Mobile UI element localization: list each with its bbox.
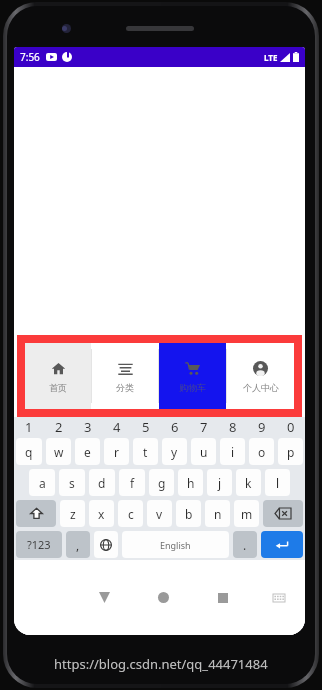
button[interactable]: Enter [261, 531, 303, 558]
staticText: s [69, 475, 75, 491]
button[interactable]: 1 [14, 417, 44, 436]
staticText: c [128, 506, 134, 522]
button[interactable]: g [149, 469, 174, 496]
staticText: 3 [84, 418, 92, 436]
staticText: 购物车 [179, 382, 206, 393]
staticText: d [98, 475, 106, 491]
staticText: g [158, 475, 166, 491]
button[interactable]: m [234, 500, 259, 527]
staticText: 7 [200, 418, 208, 436]
button[interactable]: f [119, 469, 145, 496]
button[interactable]: p [278, 438, 303, 465]
staticText: k [245, 475, 252, 491]
staticText: e [84, 444, 91, 460]
staticText: v [156, 506, 163, 522]
button[interactable]: 7 [189, 417, 218, 436]
staticText: h [187, 475, 195, 491]
button[interactable]: English [122, 531, 229, 558]
button[interactable]: Backspace [263, 500, 303, 527]
staticText: 9 [258, 418, 266, 436]
staticText: a [39, 475, 46, 491]
button[interactable]: 8 [218, 417, 247, 436]
staticText: r [114, 444, 119, 460]
button[interactable]: 0 [276, 417, 305, 436]
button[interactable]: w [46, 438, 71, 465]
staticText: p [287, 444, 295, 460]
button[interactable]: c [118, 500, 143, 527]
button[interactable]: s [59, 469, 85, 496]
button[interactable]: i [220, 438, 245, 465]
button[interactable]: Back [74, 560, 134, 635]
button[interactable]: t [133, 438, 158, 465]
button[interactable]: b [176, 500, 201, 527]
staticText: y [171, 444, 178, 460]
button[interactable]: u [191, 438, 216, 465]
button[interactable]: Period [233, 531, 257, 558]
staticText: z [70, 506, 76, 522]
button[interactable]: x [89, 500, 114, 527]
button[interactable]: d [89, 469, 115, 496]
button[interactable]: h [178, 469, 203, 496]
button[interactable]: a [29, 469, 55, 496]
button[interactable]: 9 [247, 417, 276, 436]
staticText: m [241, 506, 253, 522]
staticText: l [276, 475, 280, 491]
button[interactable]: 分类 [92, 343, 158, 409]
staticText: https://blog.csdn.net/qq_44471484 [54, 655, 268, 673]
button[interactable]: q [16, 438, 42, 465]
button[interactable]: Switch keyboard [252, 560, 305, 635]
button[interactable]: Comma [66, 531, 90, 558]
button[interactable]: l [265, 469, 290, 496]
staticText: x [98, 506, 105, 522]
staticText: , [76, 537, 80, 553]
staticText: i [231, 444, 235, 460]
staticText: u [200, 444, 208, 460]
staticText: 8 [229, 418, 237, 436]
button[interactable]: r [104, 438, 129, 465]
button[interactable]: z [60, 500, 85, 527]
staticText: n [214, 506, 222, 522]
staticText: 6 [171, 418, 179, 436]
staticText: o [258, 444, 266, 460]
staticText: 4 [113, 418, 121, 436]
staticText: j [218, 475, 222, 491]
button[interactable]: 首页 [25, 343, 91, 409]
staticText: 首页 [49, 382, 67, 393]
button[interactable]: Symbols [16, 531, 62, 558]
staticText: t [143, 444, 148, 460]
button[interactable]: 5 [131, 417, 160, 436]
button[interactable]: 6 [160, 417, 189, 436]
staticText: English [160, 539, 191, 551]
staticText: q [25, 444, 33, 460]
button[interactable]: Home [134, 560, 193, 635]
button[interactable]: Shift [16, 500, 56, 527]
button[interactable]: Recents [193, 560, 252, 635]
button[interactable]: y [162, 438, 187, 465]
button[interactable]: e [75, 438, 100, 465]
button[interactable]: v [147, 500, 172, 527]
button[interactable]: 个人中心 [227, 343, 294, 409]
staticText: 个人中心 [243, 382, 279, 393]
staticText: 分类 [116, 382, 134, 393]
button[interactable]: n [205, 500, 230, 527]
staticText: . [243, 537, 247, 553]
staticText: 5 [142, 418, 150, 436]
staticText: 1 [25, 418, 33, 436]
staticText: 7:56 [20, 50, 40, 64]
staticText: b [185, 506, 193, 522]
staticText: w [54, 444, 64, 460]
button[interactable]: 3 [73, 417, 102, 436]
staticText: ?123 [27, 537, 51, 552]
button[interactable]: o [249, 438, 274, 465]
staticText: 2 [55, 418, 63, 436]
button[interactable]: 购物车 [159, 343, 226, 409]
staticText: LTE [264, 52, 278, 63]
button[interactable]: 2 [44, 417, 73, 436]
button[interactable]: 4 [102, 417, 131, 436]
button[interactable] [94, 531, 118, 558]
staticText: f [130, 475, 135, 491]
button[interactable]: j [207, 469, 232, 496]
staticText: 0 [287, 418, 295, 436]
button[interactable]: k [236, 469, 261, 496]
